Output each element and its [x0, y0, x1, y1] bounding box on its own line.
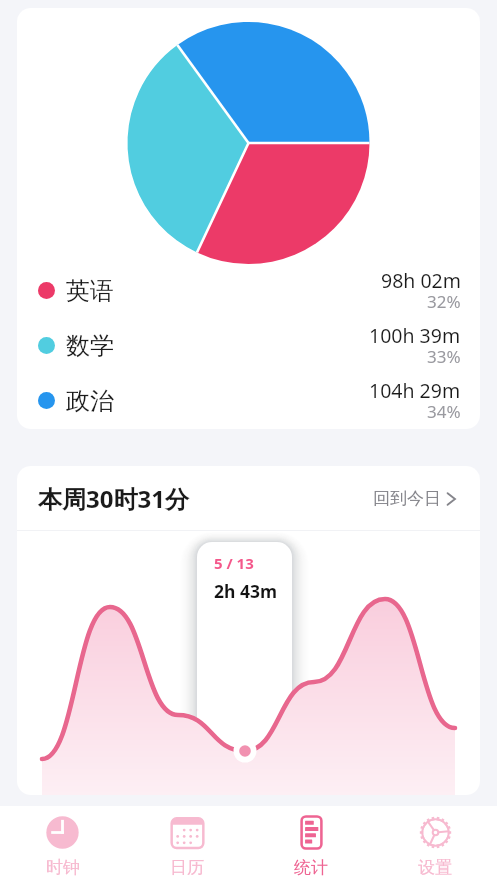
button[interactable]: 回到今日	[373, 488, 461, 509]
other: 统计	[295, 816, 328, 849]
staticText: 104h 29m	[369, 377, 461, 404]
button[interactable]: 日历	[125, 806, 249, 883]
staticText: 5 / 13	[214, 553, 254, 573]
staticText: 2h 43m	[214, 579, 278, 603]
staticText: 34%	[427, 400, 461, 423]
button[interactable]: 统计	[249, 806, 373, 883]
staticText: 数学	[66, 331, 114, 361]
staticText: 32%	[427, 290, 461, 313]
staticText: 100h 39m	[369, 322, 461, 349]
staticText: 英语	[66, 276, 114, 306]
button[interactable]: 政治	[17, 373, 480, 428]
staticText: 本周30时31分	[38, 482, 189, 515]
other: 日历	[171, 816, 204, 849]
staticText: 98h 02m	[381, 267, 461, 294]
staticText: 设置	[418, 857, 452, 878]
staticText: 时钟	[46, 857, 80, 878]
staticText: 统计	[294, 857, 328, 878]
button[interactable]: 数学	[17, 318, 480, 373]
staticText: 回到今日	[373, 488, 441, 509]
button[interactable]: 设置	[373, 806, 497, 883]
staticText: 日历	[170, 857, 204, 878]
other: 设置	[419, 816, 452, 849]
staticText: 33%	[427, 345, 461, 368]
other: 时钟	[46, 816, 79, 849]
button[interactable]: 时钟	[0, 806, 125, 883]
button[interactable]: 英语	[17, 263, 480, 318]
staticText: 政治	[66, 386, 114, 416]
